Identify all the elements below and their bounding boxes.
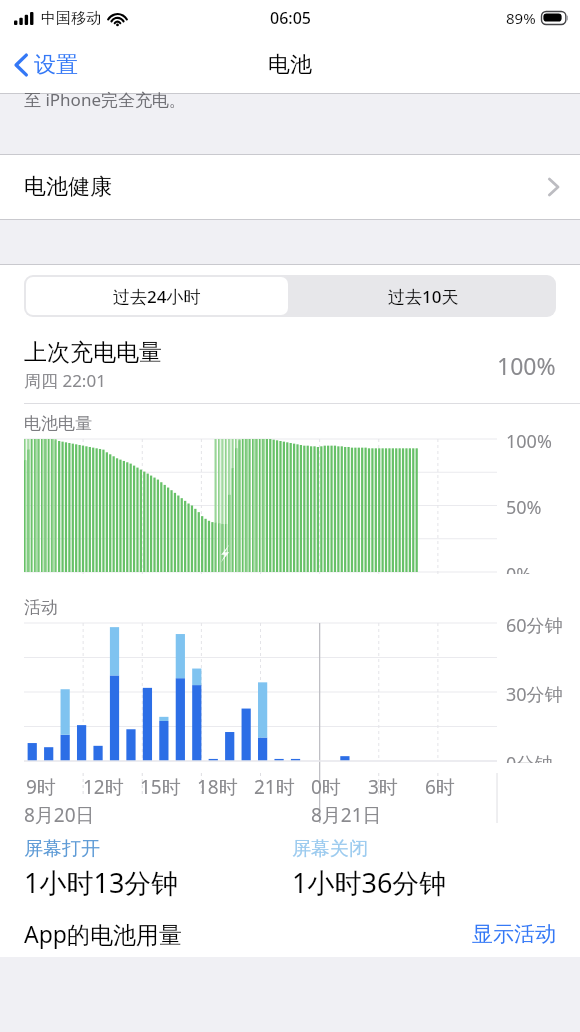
staticText: 周四 22:01 — [24, 369, 106, 392]
staticText: 100% — [497, 350, 556, 381]
button[interactable]: 电池健康 — [0, 155, 580, 219]
staticText: 1小时13分钟 — [24, 864, 179, 901]
staticText: 8月21日 — [311, 802, 382, 828]
staticText: 电池健康 — [24, 173, 112, 201]
staticText: 中国移动 — [41, 9, 101, 28]
staticText: 6时 — [425, 774, 455, 800]
staticText: 0% — [506, 562, 532, 574]
staticText: 18时 — [197, 774, 238, 800]
button[interactable]: 设置 — [8, 45, 84, 85]
staticText: 设置 — [34, 51, 78, 79]
staticText: 上次充电电量 — [24, 338, 162, 367]
staticText: 活动 — [24, 597, 58, 618]
staticText: 屏幕打开 — [24, 837, 100, 861]
staticText: 30分钟 — [506, 682, 563, 707]
staticText: 100% — [506, 429, 552, 454]
staticText: 过去24小时 — [113, 285, 201, 308]
staticText: 屏幕关闭 — [292, 837, 368, 861]
staticText: 9时 — [26, 774, 56, 800]
staticText: 1小时36分钟 — [292, 864, 447, 901]
button[interactable]: 显示活动 — [472, 921, 556, 947]
staticText: 至 iPhone完全充电。 — [24, 88, 186, 111]
button[interactable]: 过去24小时 — [26, 277, 288, 315]
staticText: 60分钟 — [506, 613, 563, 638]
staticText: 21时 — [254, 774, 295, 800]
staticText: App的电池用量 — [24, 918, 182, 949]
staticText: 3时 — [368, 774, 398, 800]
staticText: 0时 — [311, 774, 341, 800]
staticText: 0分钟 — [506, 751, 553, 763]
staticText: 06:05 — [270, 7, 311, 29]
staticText: 50% — [506, 495, 542, 520]
staticText: 电池 — [268, 51, 312, 79]
staticText: 8月20日 — [24, 802, 95, 828]
staticText: 显示活动 — [472, 921, 556, 947]
staticText: 12时 — [83, 774, 124, 800]
staticText: 电池电量 — [24, 413, 92, 434]
staticText: 15时 — [140, 774, 181, 800]
staticText: 过去10天 — [388, 285, 459, 308]
staticText: 89% — [506, 8, 536, 28]
button[interactable]: 过去10天 — [290, 275, 556, 317]
